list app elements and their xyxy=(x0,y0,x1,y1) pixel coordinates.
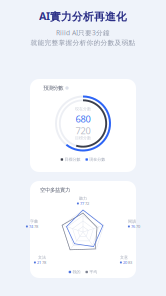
staticText: 文意 xyxy=(120,255,128,260)
staticText: 聽力 xyxy=(79,196,87,201)
staticText: 77 xyxy=(80,201,84,206)
staticText: 20 xyxy=(123,260,127,265)
staticText: 空中多益實力 xyxy=(40,187,70,193)
staticText: 就能完整掌握分析你的分數及弱點 xyxy=(30,39,135,47)
staticText: 閱讀 xyxy=(128,219,136,224)
button[interactable]: 預測分數 xyxy=(30,79,136,172)
staticText: 平均 xyxy=(89,269,97,274)
button[interactable]: 空中多益實力 xyxy=(30,181,136,278)
staticText: 預測分數 xyxy=(43,85,63,91)
staticText: 目標分數 xyxy=(75,135,91,140)
staticText: 現在分數 xyxy=(89,157,105,162)
staticText: 78 xyxy=(34,224,38,229)
staticText: Riiid AI只要3分鐘 xyxy=(56,28,110,37)
staticText: 70 xyxy=(136,224,140,229)
staticText: 680 xyxy=(75,113,90,125)
staticText: AI實力分析再進化 xyxy=(39,9,127,23)
staticText: 78 xyxy=(42,260,46,265)
staticText: 720 xyxy=(75,124,90,137)
staticText: 我的 xyxy=(72,269,80,274)
staticText: 21 xyxy=(37,260,41,265)
staticText: 現在分數 xyxy=(75,106,91,111)
staticText: 字彙 xyxy=(30,219,38,224)
staticText: 72 xyxy=(85,201,89,206)
staticText: 文法 xyxy=(38,255,46,260)
staticText: 76 xyxy=(131,224,135,229)
staticText: 目標分數 xyxy=(64,157,80,162)
staticText: 83 xyxy=(128,260,132,265)
staticText: 74 xyxy=(29,224,33,229)
